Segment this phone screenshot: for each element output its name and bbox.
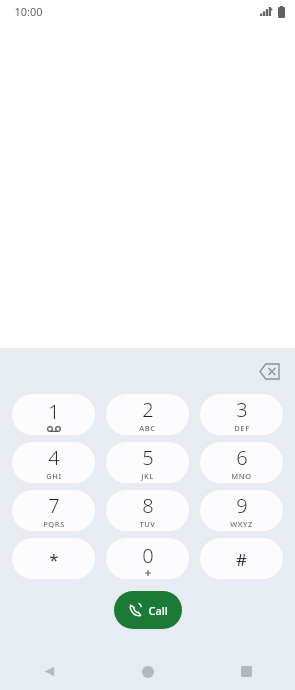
- staticText: *: [49, 548, 59, 570]
- button[interactable]: 4: [12, 442, 95, 483]
- staticText: Call: [148, 603, 168, 618]
- button[interactable]: *: [12, 538, 95, 579]
- button[interactable]: 0: [106, 538, 189, 579]
- staticText: 1: [48, 398, 60, 425]
- button[interactable]: Call: [114, 591, 182, 629]
- staticText: DEF: [234, 423, 250, 433]
- button[interactable]: 3: [200, 394, 283, 435]
- staticText: 2: [142, 396, 154, 423]
- button[interactable]: 5: [106, 442, 189, 483]
- staticText: 3: [236, 396, 248, 423]
- staticText: JKL: [141, 471, 154, 481]
- staticText: TUV: [139, 519, 156, 529]
- staticText: 4: [48, 444, 60, 471]
- button[interactable]: 2: [106, 394, 189, 435]
- button[interactable]: Home: [99, 653, 197, 690]
- staticText: WXYZ: [230, 519, 253, 529]
- button[interactable]: 7: [12, 490, 95, 531]
- button[interactable]: Back: [0, 653, 99, 690]
- button[interactable]: #: [200, 538, 283, 579]
- staticText: 6: [236, 444, 248, 471]
- staticText: PQRS: [43, 519, 65, 529]
- button[interactable]: 1: [12, 394, 95, 435]
- staticText: 8: [142, 492, 154, 519]
- button[interactable]: 9: [200, 490, 283, 531]
- staticText: #: [236, 548, 247, 570]
- staticText: 7: [48, 492, 60, 519]
- button[interactable]: 6: [200, 442, 283, 483]
- button[interactable]: Backspace: [251, 353, 287, 389]
- staticText: 5: [142, 444, 154, 471]
- staticText: MNO: [231, 471, 252, 481]
- staticText: GHI: [46, 471, 62, 481]
- button[interactable]: Recents: [197, 653, 295, 690]
- staticText: ABC: [139, 423, 156, 433]
- staticText: 10:00: [14, 4, 43, 19]
- staticText: 9: [236, 492, 248, 519]
- button[interactable]: 8: [106, 490, 189, 531]
- staticText: 0: [142, 542, 154, 569]
